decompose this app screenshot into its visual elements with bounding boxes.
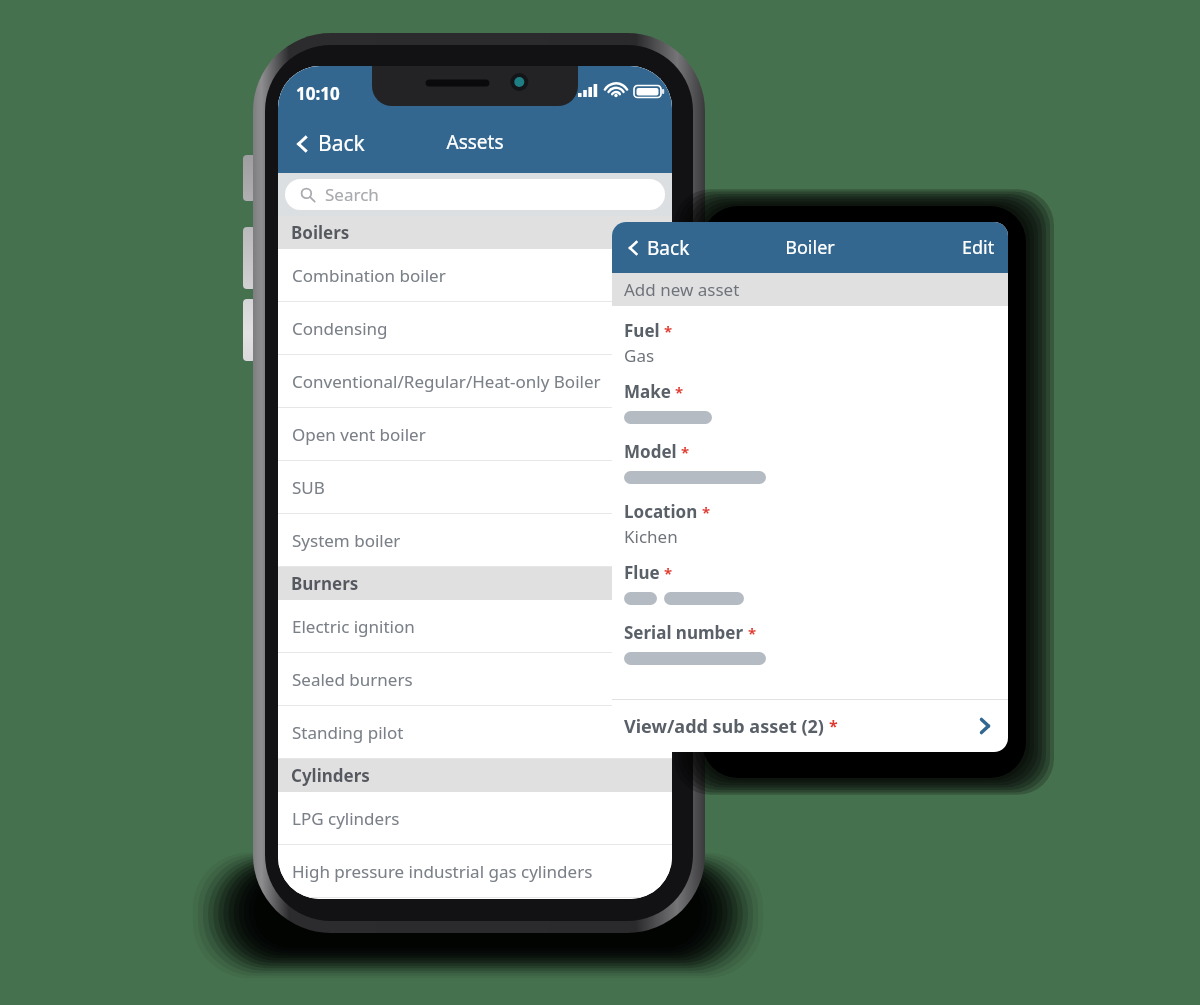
staticText: Open vent boiler (292, 423, 426, 446)
staticText: Flue (624, 561, 660, 584)
staticText: * (664, 321, 673, 341)
staticText: Electric ignition (292, 615, 415, 638)
button[interactable]: View/add sub asset (2) (612, 700, 1008, 752)
staticText: Search (325, 183, 379, 206)
staticText: SUB (292, 476, 325, 499)
staticText: Sealed burners (292, 668, 413, 691)
staticText: Condensing (292, 317, 388, 340)
staticText: Gas (624, 344, 655, 367)
button[interactable]: LPG cylinders (278, 792, 672, 845)
button[interactable]: Edit (949, 227, 1008, 268)
staticText: Model (624, 440, 677, 463)
button[interactable]: Combination boiler (278, 249, 672, 302)
staticText: Burners (291, 572, 359, 595)
staticText: Standing pilot (292, 721, 404, 744)
staticText: Boilers (291, 221, 350, 244)
staticText: Assets (278, 129, 672, 155)
staticText: Back (647, 235, 690, 261)
button[interactable]: Open vent boiler (278, 408, 672, 461)
button[interactable]: Back (618, 230, 696, 266)
button[interactable]: Back (286, 124, 371, 163)
staticText: * (702, 502, 711, 522)
staticText: LPG cylinders (292, 807, 400, 830)
staticText: * (748, 623, 757, 643)
staticText: Back (318, 129, 365, 158)
staticText: Kichen (624, 525, 678, 548)
button[interactable]: Standing pilot (278, 706, 672, 759)
button[interactable]: Search (285, 179, 665, 210)
staticText: System boiler (292, 529, 401, 552)
staticText: * (664, 563, 673, 583)
other: Back (624, 238, 644, 258)
other: Back (292, 133, 314, 155)
staticText: Boiler (612, 235, 1008, 260)
button[interactable]: System boiler (278, 514, 672, 567)
staticText: Edit (962, 235, 995, 260)
staticText: Cylinders (291, 764, 370, 787)
staticText: Location (624, 500, 698, 523)
staticText: Serial number (624, 621, 744, 644)
button[interactable]: Sealed burners (278, 653, 672, 706)
staticText: * (681, 442, 690, 462)
staticText: Fuel (624, 319, 660, 342)
button[interactable]: Electric ignition (278, 600, 672, 653)
staticText: * (675, 382, 684, 402)
button[interactable]: SUB (278, 461, 672, 514)
staticText: Make (624, 380, 671, 403)
button[interactable]: Condensing (278, 302, 672, 355)
button[interactable]: High pressure industrial gas cylinders (278, 845, 672, 898)
button[interactable]: Conventional/Regular/Heat-only Boiler (278, 355, 672, 408)
button[interactable]: Add new asset (612, 273, 1008, 306)
staticText: View/add sub asset (2) (624, 714, 824, 739)
staticText: * (829, 715, 838, 737)
staticText: High pressure industrial gas cylinders (292, 860, 593, 883)
staticText: Conventional/Regular/Heat-only Boiler (292, 370, 601, 393)
staticText: Combination boiler (292, 264, 446, 287)
staticText: 10:10 (296, 82, 340, 105)
other: Open (974, 715, 996, 737)
staticText: Add new asset (624, 278, 740, 301)
